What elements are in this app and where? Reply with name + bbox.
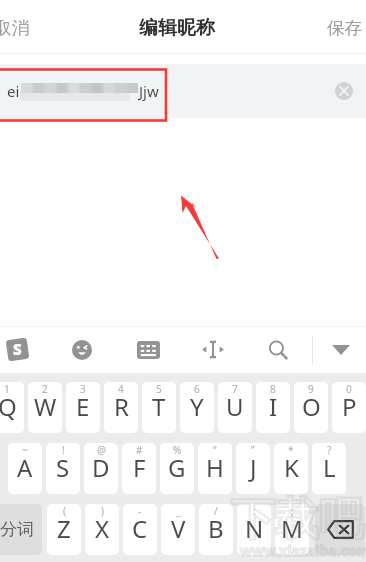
button[interactable]: 分词: [0, 504, 42, 555]
staticText: ): [101, 504, 104, 518]
staticText: V: [171, 512, 186, 545]
staticText: ~: [22, 443, 28, 457]
button[interactable]: Search: [261, 326, 295, 373]
staticText: (: [63, 504, 66, 518]
staticText: 5: [156, 382, 162, 396]
staticText: 7: [232, 382, 238, 396]
staticText: @: [97, 443, 106, 457]
staticText: 8: [270, 382, 276, 396]
button[interactable]: 3: [66, 382, 100, 433]
staticText: 4: [118, 382, 124, 396]
staticText: X: [95, 512, 110, 545]
staticText: ;: [291, 504, 294, 518]
staticText: 6: [194, 382, 200, 396]
staticText: S: [13, 339, 22, 359]
staticText: U: [226, 390, 244, 423]
staticText: A: [17, 451, 33, 484]
staticText: *: [288, 443, 294, 457]
button[interactable]: ~: [8, 443, 42, 494]
staticText: W: [34, 390, 57, 423]
button[interactable]: !: [46, 443, 80, 494]
staticText: T: [152, 390, 166, 423]
staticText: “: [213, 443, 217, 457]
staticText: H: [206, 451, 224, 484]
staticText: K: [284, 451, 299, 484]
button[interactable]: Clear text: [335, 82, 353, 100]
button[interactable]: @: [84, 443, 118, 494]
button[interactable]: 1: [0, 382, 24, 433]
staticText: www.xiazaiba.com: [240, 541, 366, 560]
staticText: ”: [251, 443, 255, 457]
staticText: !: [62, 443, 65, 457]
button[interactable]: 9: [294, 382, 328, 433]
button[interactable]: 0: [332, 382, 366, 433]
button[interactable]: ;: [275, 504, 309, 555]
button[interactable]: Sogou input: [0, 326, 34, 373]
button[interactable]: :: [237, 504, 271, 555]
staticText: Z: [57, 512, 71, 545]
button[interactable]: Switch keyboard: [131, 326, 165, 373]
staticText: 分词: [0, 519, 34, 540]
staticText: /: [214, 504, 218, 518]
button[interactable]: /: [199, 504, 233, 555]
staticText: Q: [0, 390, 17, 423]
button[interactable]: Move cursor: [196, 326, 230, 373]
staticText: -: [138, 504, 142, 518]
button[interactable]: 5: [142, 382, 176, 433]
button[interactable]: 7: [218, 382, 252, 433]
button[interactable]: 6: [180, 382, 214, 433]
staticText: 编辑昵称: [139, 16, 215, 40]
button[interactable]: *: [274, 443, 308, 494]
button[interactable]: ”: [236, 443, 270, 494]
staticText: B: [208, 512, 224, 545]
button[interactable]: 保存: [322, 17, 366, 39]
button[interactable]: 取消: [0, 17, 34, 39]
staticText: 2: [42, 382, 48, 396]
button[interactable]: Hide keyboard: [324, 326, 358, 373]
button[interactable]: #: [122, 443, 156, 494]
button[interactable]: Emoji: [65, 326, 99, 373]
staticText: M: [281, 512, 303, 545]
button[interactable]: ): [85, 504, 119, 555]
staticText: %: [173, 443, 182, 457]
staticText: J: [250, 451, 257, 484]
staticText: P: [342, 390, 357, 423]
staticText: N: [245, 512, 264, 545]
staticText: G: [168, 451, 186, 484]
staticText: C: [132, 512, 148, 545]
button[interactable]: _: [161, 504, 195, 555]
button[interactable]: -: [123, 504, 157, 555]
button[interactable]: Delete: [315, 504, 365, 555]
staticText: 0: [346, 382, 352, 396]
staticText: #: [136, 443, 143, 457]
staticText: S: [56, 451, 70, 484]
staticText: I: [269, 390, 278, 423]
staticText: Y: [190, 390, 204, 423]
button[interactable]: %: [160, 443, 194, 494]
button[interactable]: ?: [312, 443, 346, 494]
staticText: 下载吧: [231, 492, 363, 547]
staticText: E: [76, 390, 90, 423]
staticText: O: [302, 390, 321, 423]
staticText: ei: [7, 81, 20, 101]
button[interactable]: (: [47, 504, 81, 555]
button[interactable]: ei: [0, 64, 366, 118]
staticText: ?: [327, 443, 332, 457]
staticText: 1: [4, 382, 10, 396]
button[interactable]: 8: [256, 382, 290, 433]
staticText: R: [114, 390, 129, 423]
staticText: F: [133, 451, 146, 484]
staticText: 9: [308, 382, 314, 396]
staticText: 3: [80, 382, 86, 396]
staticText: :: [253, 504, 256, 518]
button[interactable]: 2: [28, 382, 62, 433]
button[interactable]: 4: [104, 382, 138, 433]
staticText: Jjw: [139, 81, 159, 101]
staticText: D: [92, 451, 110, 484]
staticText: L: [323, 451, 336, 484]
button[interactable]: “: [198, 443, 232, 494]
staticText: _: [176, 504, 181, 518]
